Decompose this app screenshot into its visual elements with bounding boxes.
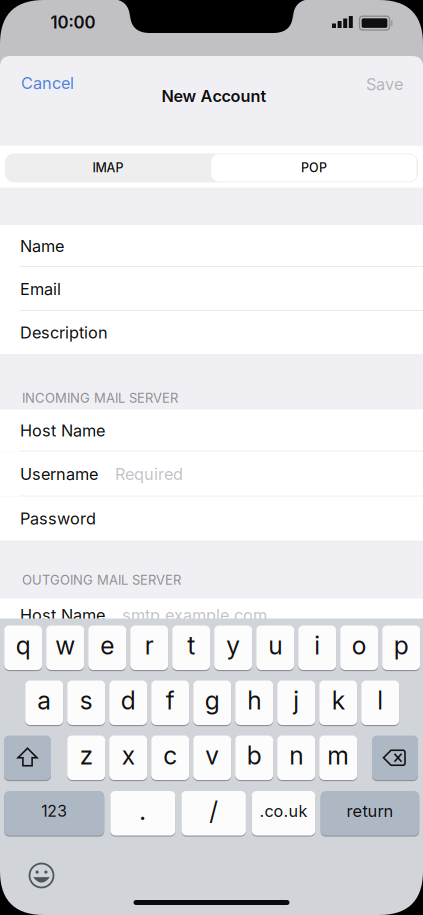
staticText: Email — [20, 279, 61, 299]
staticText: 123 — [41, 802, 67, 821]
staticText: d — [121, 685, 136, 716]
staticText: POP — [301, 160, 327, 175]
button[interactable]: x — [109, 735, 147, 782]
staticText: c — [163, 740, 177, 771]
button[interactable]: Email — [0, 267, 423, 311]
staticText: 10:00 — [50, 12, 95, 33]
button[interactable]: 123 — [4, 791, 104, 837]
staticText: Save — [366, 74, 403, 94]
button[interactable]: IMAP — [5, 153, 211, 182]
button[interactable]: POP — [210, 153, 417, 182]
staticText: j — [293, 685, 299, 716]
staticText: New Account — [161, 86, 266, 106]
staticText: return — [346, 801, 393, 821]
staticText: t — [187, 630, 195, 661]
button[interactable]: return — [321, 791, 419, 837]
button[interactable]: i — [298, 625, 336, 672]
staticText: INCOMING MAIL SERVER — [22, 390, 178, 406]
staticText: i — [314, 630, 320, 661]
button[interactable]: k — [319, 680, 357, 727]
staticText: h — [247, 685, 261, 716]
staticText: / — [209, 796, 218, 826]
staticText: OUTGOING MAIL SERVER — [22, 572, 181, 588]
button[interactable]: f — [151, 680, 189, 727]
staticText: Name — [20, 236, 64, 256]
staticText: Host Name — [20, 605, 105, 625]
button[interactable]: Delete — [372, 735, 418, 782]
staticText: Host Name — [20, 421, 105, 440]
button[interactable]: s — [67, 680, 105, 727]
button[interactable]: h — [235, 680, 273, 727]
button[interactable]: Host Name — [0, 598, 423, 631]
button[interactable]: Save — [366, 66, 422, 102]
staticText: o — [352, 630, 367, 661]
button[interactable]: r — [130, 625, 168, 672]
button[interactable]: Username — [0, 451, 423, 496]
button[interactable]: / — [181, 791, 246, 837]
staticText: l — [377, 685, 383, 716]
staticText: z — [80, 740, 93, 771]
staticText: f — [166, 685, 175, 716]
button[interactable]: d — [109, 680, 147, 727]
button[interactable]: u — [256, 625, 294, 672]
staticText: smtp.example.com — [122, 605, 267, 625]
button[interactable]: Host Name — [0, 409, 423, 451]
button[interactable]: m — [319, 735, 357, 782]
button[interactable]: t — [172, 625, 210, 672]
button[interactable]: l — [361, 680, 399, 727]
staticText: u — [268, 630, 282, 661]
staticText: w — [55, 630, 75, 661]
staticText: a — [37, 685, 51, 716]
button[interactable]: v — [193, 735, 231, 782]
staticText: Password — [20, 509, 96, 528]
button[interactable]: e — [88, 625, 126, 672]
button[interactable]: c — [151, 735, 189, 782]
staticText: Cancel — [21, 73, 74, 93]
staticText: Required — [115, 464, 183, 484]
staticText: y — [226, 630, 240, 661]
button[interactable]: Cancel — [21, 65, 121, 101]
staticText: Description — [20, 323, 108, 342]
staticText: v — [205, 740, 219, 771]
button[interactable]: j — [277, 680, 315, 727]
button[interactable]: y — [214, 625, 252, 672]
staticText: . — [139, 796, 146, 826]
button[interactable]: w — [46, 625, 84, 672]
staticText: q — [16, 630, 31, 661]
button[interactable]: Shift — [4, 735, 51, 782]
staticText: p — [394, 630, 409, 661]
staticText: .co.uk — [260, 801, 308, 821]
button[interactable]: . — [110, 791, 175, 837]
button[interactable]: z — [67, 735, 105, 782]
button[interactable]: n — [277, 735, 315, 782]
staticText: x — [122, 740, 135, 771]
button[interactable]: o — [340, 625, 378, 672]
staticText: n — [289, 740, 303, 771]
button[interactable]: q — [4, 625, 42, 672]
button[interactable]: Name — [0, 225, 423, 267]
staticText: b — [247, 740, 262, 771]
staticText: Username — [20, 464, 98, 484]
staticText: r — [145, 630, 154, 661]
button[interactable]: Emoji keyboard — [28, 862, 54, 888]
staticText: s — [80, 685, 93, 716]
staticText: e — [100, 630, 114, 661]
button[interactable]: p — [382, 625, 420, 672]
button[interactable]: Password — [0, 496, 423, 540]
button[interactable]: b — [235, 735, 273, 782]
button[interactable]: .co.uk — [252, 791, 315, 837]
button[interactable]: g — [193, 680, 231, 727]
staticText: IMAP — [92, 160, 123, 175]
staticText: k — [332, 685, 345, 716]
staticText: g — [205, 685, 220, 716]
staticText: m — [327, 740, 349, 771]
button[interactable]: Description — [0, 311, 423, 354]
button[interactable]: a — [25, 680, 63, 727]
